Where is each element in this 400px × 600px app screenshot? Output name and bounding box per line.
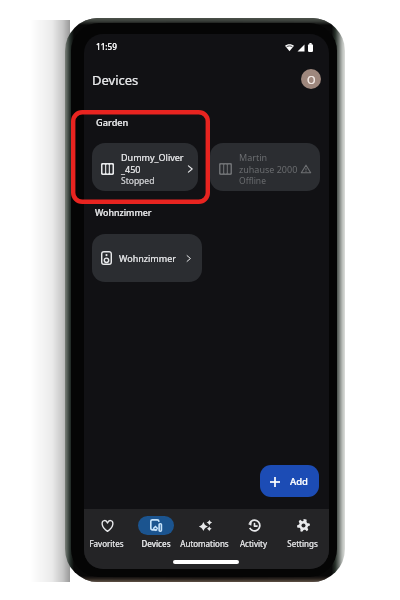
- button[interactable]: Wohnzimmer: [92, 234, 202, 282]
- button[interactable]: Add: [260, 465, 319, 497]
- button[interactable]: Devices: [131, 509, 180, 549]
- button[interactable]: Dummy_Oliver: [92, 143, 198, 191]
- staticText: Garden: [96, 116, 129, 129]
- staticText: Offline: [239, 175, 266, 187]
- staticText: Martin: [239, 151, 268, 163]
- staticText: Dummy_Oliver: [121, 151, 184, 163]
- staticText: Favorites: [89, 538, 124, 549]
- button[interactable]: Automations: [180, 509, 229, 549]
- button[interactable]: Account: [301, 69, 321, 89]
- staticText: 11:59: [96, 41, 117, 52]
- staticText: Add: [290, 475, 309, 488]
- staticText: O: [307, 72, 316, 87]
- staticText: Wohnzimmer: [119, 252, 176, 264]
- staticText: _450: [121, 163, 141, 175]
- staticText: Wohnzimmer: [95, 207, 152, 219]
- staticText: Activity: [240, 538, 267, 549]
- button[interactable]: Activity: [229, 509, 278, 549]
- staticText: Devices: [92, 71, 139, 89]
- staticText: zuhause 2000: [239, 163, 298, 175]
- staticText: Settings: [287, 538, 318, 549]
- button[interactable]: Martin: [210, 143, 320, 191]
- staticText: Automations: [180, 538, 229, 549]
- staticText: Devices: [141, 538, 171, 549]
- staticText: Stopped: [121, 175, 155, 187]
- button[interactable]: Favorites: [84, 509, 131, 549]
- button[interactable]: Settings: [278, 509, 327, 549]
